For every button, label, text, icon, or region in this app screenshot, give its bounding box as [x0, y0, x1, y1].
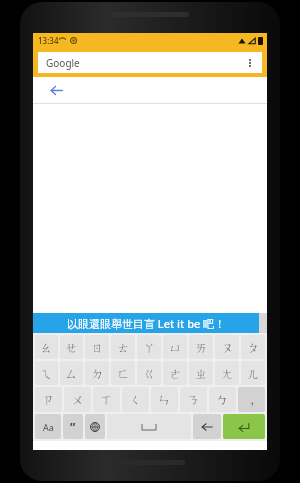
staticText: ㄒ — [100, 392, 113, 407]
button[interactable]: Space — [107, 414, 191, 439]
staticText: ㄑ — [129, 392, 142, 407]
staticText: ㄣ — [158, 392, 171, 407]
staticText: 13:34 — [38, 35, 59, 46]
button[interactable]: ㄒ — [93, 387, 120, 412]
staticText: ㄊ — [117, 340, 130, 355]
button[interactable]: ㄡ — [215, 335, 239, 359]
button[interactable]: ㄩ — [163, 335, 187, 359]
button[interactable]: ㄓ — [189, 361, 213, 385]
button[interactable]: ， — [238, 387, 265, 412]
button[interactable]: ㄗ — [35, 387, 62, 412]
staticText: ㄈ — [117, 366, 130, 381]
staticText: ， — [246, 392, 258, 407]
button[interactable]: ㄅ — [209, 387, 236, 412]
button[interactable]: ㄣ — [151, 387, 178, 412]
staticText: ㄗ — [42, 392, 55, 407]
button[interactable]: Enter — [223, 414, 265, 439]
button[interactable]: Back — [47, 81, 65, 99]
button[interactable]: ㄉ — [85, 361, 109, 385]
staticText: ㄍ — [143, 366, 156, 381]
button[interactable]: Change language — [85, 414, 105, 439]
button[interactable]: ㄨ — [64, 387, 91, 412]
button[interactable]: ㄍ — [137, 361, 161, 385]
button[interactable]: Aa — [35, 414, 61, 439]
staticText: ㄟ — [40, 366, 53, 381]
button[interactable]: 以眼還眼舉世目盲 Let it be 吧！ — [33, 313, 259, 333]
button[interactable]: ㄊ — [111, 335, 135, 359]
button[interactable]: Backspace — [193, 414, 221, 439]
button[interactable]: More options — [240, 53, 260, 73]
button[interactable]: ㄠ — [35, 335, 58, 359]
staticText: ㄞ — [195, 340, 208, 355]
button[interactable]: ㄟ — [35, 361, 58, 385]
staticText: ㄩ — [169, 340, 182, 355]
staticText: ㄦ — [247, 366, 260, 381]
button[interactable]: ㄈ — [111, 361, 135, 385]
staticText: ㄆ — [247, 340, 260, 355]
staticText: ㄅ — [216, 392, 229, 407]
button[interactable]: ㄋ — [180, 387, 207, 412]
staticText: ㄨ — [71, 392, 84, 407]
staticText: Aa — [43, 421, 54, 433]
staticText: ㄓ — [195, 366, 208, 381]
button[interactable]: ㄞ — [189, 335, 213, 359]
button[interactable]: ㄑ — [122, 387, 149, 412]
button[interactable]: ㄆ — [241, 335, 265, 359]
button[interactable]: Google — [38, 52, 262, 73]
button[interactable]: ㄦ — [241, 361, 265, 385]
button[interactable]: ㄖ — [85, 335, 109, 359]
button[interactable]: ㄜ — [163, 361, 187, 385]
staticText: ㄖ — [91, 340, 104, 355]
staticText: Google — [46, 56, 240, 70]
staticText: ㄋ — [187, 392, 200, 407]
staticText: ㄉ — [91, 366, 104, 381]
staticText: ㄚ — [143, 340, 156, 355]
staticText: 以眼還眼舉世目盲 Let it be 吧！ — [67, 316, 226, 331]
staticText: ㄜ — [169, 366, 182, 381]
button[interactable]: ㄤ — [215, 361, 239, 385]
staticText: ㄡ — [221, 340, 234, 355]
staticText: ㄤ — [221, 366, 234, 381]
button[interactable]: ㄙ — [60, 361, 83, 385]
staticText: ㄙ — [65, 366, 78, 381]
staticText: ” — [70, 419, 76, 435]
staticText: ㄝ — [65, 340, 78, 355]
button[interactable]: Quote — [63, 414, 83, 439]
staticText: ㄠ — [40, 340, 53, 355]
button[interactable]: ㄚ — [137, 335, 161, 359]
button[interactable]: ㄝ — [60, 335, 83, 359]
